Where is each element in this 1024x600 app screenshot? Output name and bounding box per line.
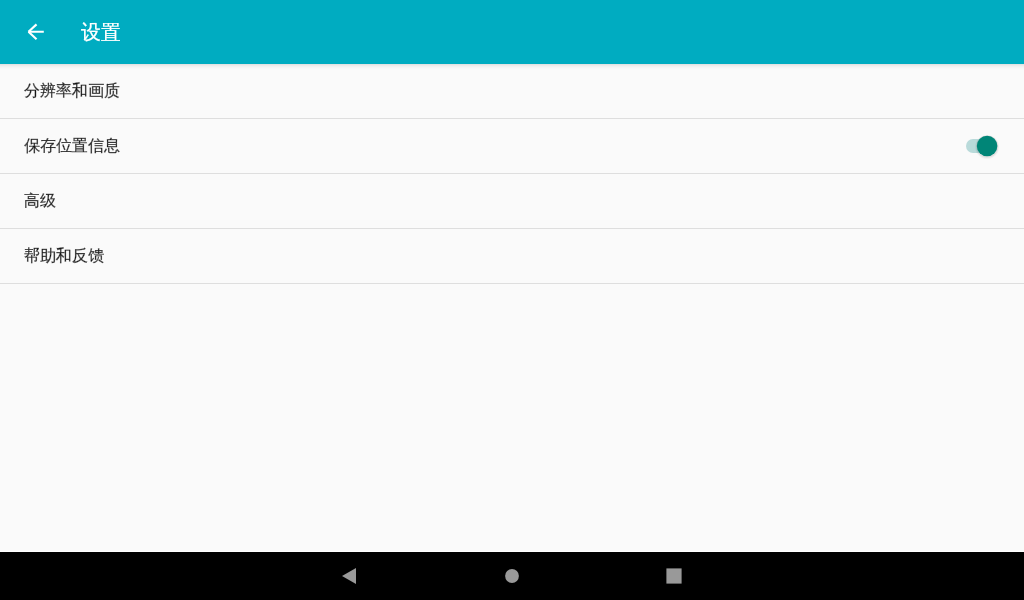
staticText: 保存位置信息 — [24, 136, 120, 156]
staticText: 分辨率和画质 — [24, 81, 120, 101]
staticText: 高级 — [24, 191, 56, 211]
button[interactable]: 保存位置信息 — [0, 119, 1024, 173]
button[interactable]: 高级 — [0, 174, 1024, 228]
button[interactable]: Navigate up — [12, 8, 60, 56]
button[interactable]: 帮助和反馈 — [0, 229, 1024, 283]
staticText: 设置 — [81, 20, 121, 45]
staticText: 分辨率和画质 — [24, 81, 120, 101]
button[interactable]: 分辨率和画质 — [0, 64, 1024, 118]
button[interactable]: Save location information, on — [957, 130, 997, 162]
staticText: 高级 — [24, 191, 56, 211]
staticText: 帮助和反馈 — [24, 246, 104, 266]
button[interactable]: Home — [488, 552, 536, 600]
button[interactable]: Back — [325, 552, 373, 600]
button[interactable]: Recent apps — [650, 552, 698, 600]
staticText: 帮助和反馈 — [24, 246, 104, 266]
staticText: 保存位置信息 — [24, 136, 120, 156]
